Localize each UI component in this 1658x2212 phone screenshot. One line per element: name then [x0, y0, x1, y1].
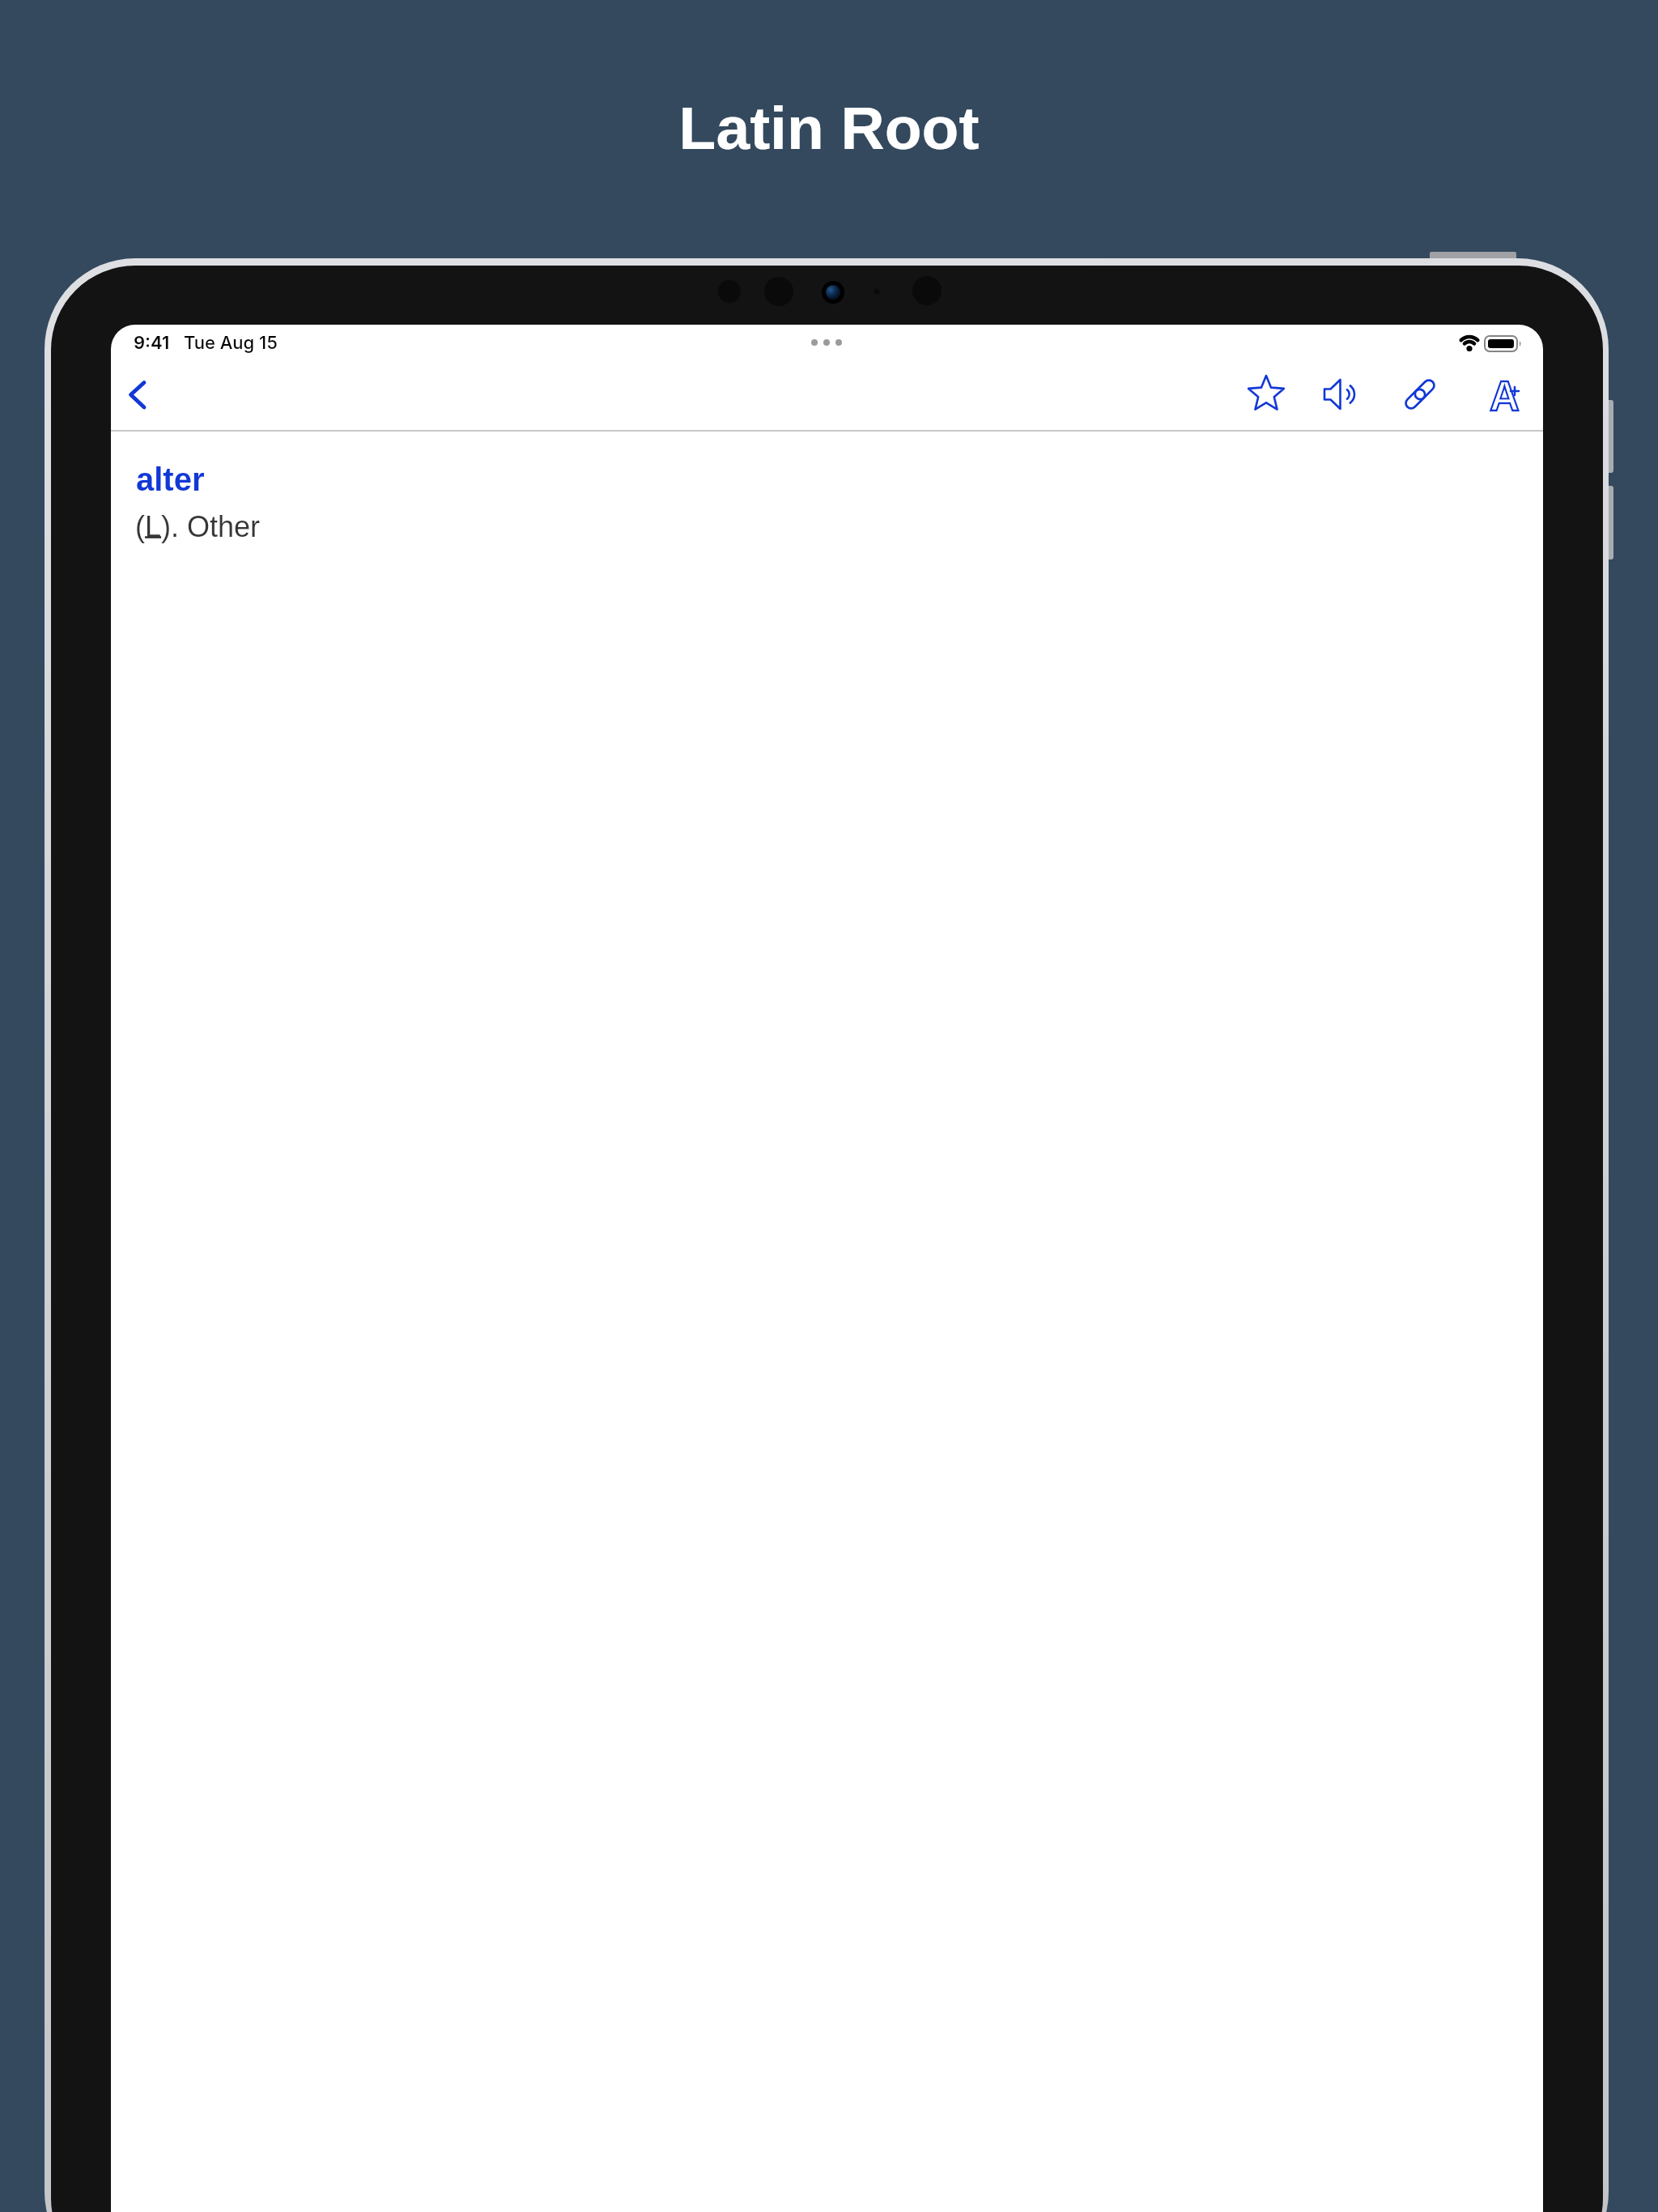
button[interactable]: [1316, 370, 1365, 419]
staticText: 9:41: [134, 332, 170, 354]
staticText: A: [1490, 373, 1520, 419]
button[interactable]: [119, 370, 168, 419]
button[interactable]: [1396, 370, 1444, 419]
button[interactable]: [1242, 370, 1290, 419]
button[interactable]: A: [1472, 370, 1520, 419]
staticText: (L). Other: [135, 510, 261, 542]
staticText: Latin Root: [0, 94, 1658, 162]
staticText: Tue Aug 15: [184, 332, 278, 354]
staticText: alter: [136, 462, 205, 498]
